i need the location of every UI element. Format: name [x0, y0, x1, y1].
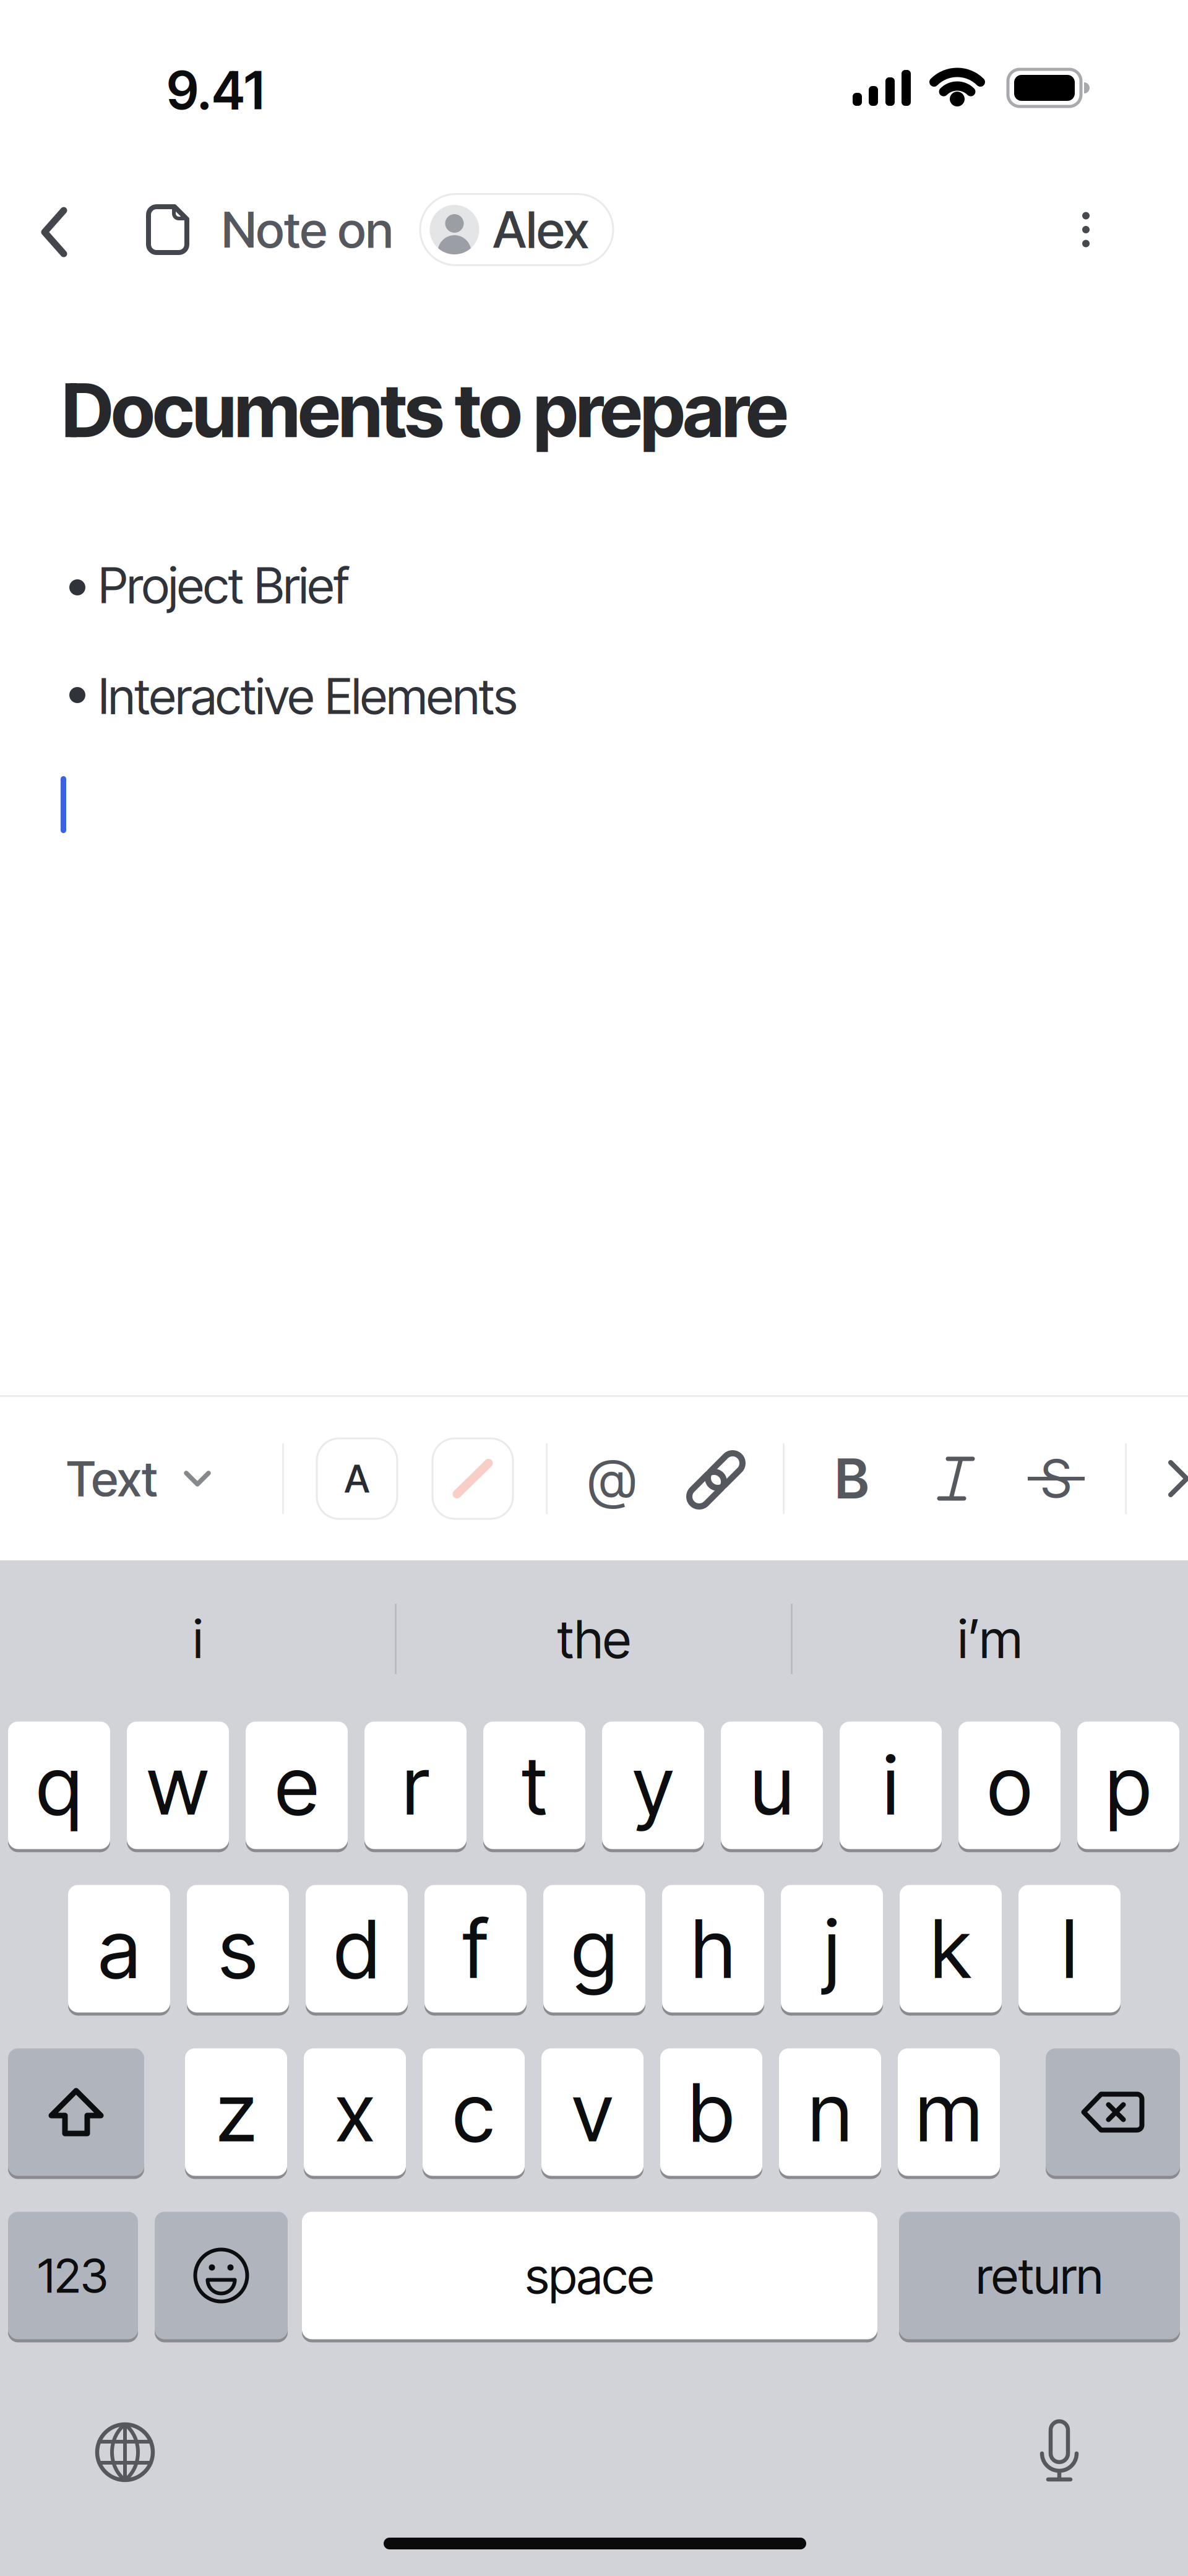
staticText: space: [525, 2246, 654, 2305]
button[interactable]: h: [662, 1883, 764, 2014]
staticText: a: [98, 1900, 140, 1997]
button[interactable]: m: [898, 2047, 1000, 2177]
staticText: B: [835, 1446, 869, 1512]
button[interactable]: More formatting: [1168, 1460, 1188, 1497]
button[interactable]: j: [781, 1883, 883, 2014]
button[interactable]: t: [483, 1720, 585, 1851]
button[interactable]: s: [187, 1883, 289, 2014]
button[interactable]: k: [900, 1883, 1002, 2014]
button[interactable]: c: [423, 2047, 525, 2177]
staticText: Project Brief: [98, 555, 349, 615]
staticText: f: [463, 1900, 488, 1997]
staticText: S: [1041, 1447, 1072, 1510]
staticText: 123: [38, 2247, 108, 2304]
button[interactable]: l: [1018, 1883, 1121, 2014]
staticText: x: [335, 2063, 375, 2161]
staticText: k: [931, 1900, 971, 1997]
button[interactable]: 123: [8, 2210, 138, 2341]
staticText: Documents to prepare: [62, 365, 788, 455]
button[interactable]: Mention: [588, 1446, 636, 1512]
button[interactable]: a: [68, 1883, 170, 2014]
staticText: Interactive Elements: [98, 666, 517, 726]
button[interactable]: x: [304, 2047, 406, 2177]
button[interactable]: Strikethrough: [1028, 1447, 1085, 1510]
button[interactable]: d: [306, 1883, 408, 2014]
staticText: u: [751, 1737, 793, 1834]
staticText: i’m: [958, 1607, 1022, 1670]
button[interactable]: Next keyboard: [95, 2423, 155, 2482]
staticText: h: [691, 1900, 735, 1997]
staticText: v: [572, 2063, 613, 2161]
staticText: t: [522, 1737, 547, 1834]
button[interactable]: e: [246, 1720, 348, 1851]
button[interactable]: o: [958, 1720, 1061, 1851]
button[interactable]: f: [424, 1883, 527, 2014]
staticText: y: [633, 1737, 674, 1834]
staticText: z: [216, 2063, 256, 2161]
staticText: p: [1106, 1737, 1151, 1834]
button[interactable]: g: [543, 1883, 645, 2014]
button[interactable]: Back: [41, 207, 67, 257]
button[interactable]: i: [193, 1607, 203, 1670]
staticText: w: [147, 1737, 209, 1834]
button[interactable]: Bold: [835, 1446, 869, 1512]
button[interactable]: z: [185, 2047, 287, 2177]
staticText: Alex: [493, 199, 589, 260]
button[interactable]: p: [1077, 1720, 1179, 1851]
staticText: m: [916, 2063, 982, 2161]
staticText: i: [193, 1607, 203, 1670]
button[interactable]: space: [302, 2210, 877, 2341]
button[interactable]: Dictate: [1031, 2418, 1088, 2482]
button[interactable]: v: [541, 2047, 643, 2177]
button[interactable]: Link: [682, 1446, 750, 1514]
staticText: n: [808, 2063, 852, 2161]
staticText: o: [988, 1737, 1031, 1834]
staticText: c: [453, 2063, 494, 2161]
button[interactable]: return: [899, 2210, 1180, 2341]
staticText: q: [37, 1737, 82, 1834]
button[interactable]: w: [127, 1720, 229, 1851]
button[interactable]: b: [660, 2047, 762, 2177]
staticText: i: [883, 1737, 898, 1834]
button[interactable]: i: [840, 1720, 942, 1851]
staticText: b: [689, 2063, 734, 2161]
button[interactable]: Shift: [8, 2047, 144, 2177]
staticText: the: [557, 1607, 631, 1670]
button[interactable]: Text style: [316, 1437, 398, 1520]
button[interactable]: Emoji: [155, 2210, 288, 2341]
button[interactable]: the: [557, 1607, 631, 1670]
staticText: g: [572, 1900, 617, 1997]
button[interactable]: Highlight: [432, 1437, 514, 1520]
staticText: l: [1062, 1900, 1077, 1997]
button[interactable]: n: [779, 2047, 881, 2177]
button[interactable]: Alex: [419, 193, 614, 266]
staticText: A: [344, 1455, 370, 1502]
staticText: Note on: [222, 200, 394, 260]
button[interactable]: More: [1078, 203, 1093, 256]
staticText: d: [334, 1900, 379, 1997]
staticText: 9.41: [167, 59, 264, 122]
staticText: e: [275, 1737, 318, 1834]
staticText: return: [976, 2246, 1103, 2305]
button[interactable]: q: [8, 1720, 110, 1851]
button[interactable]: Text: [66, 1449, 211, 1508]
staticText: @: [588, 1446, 636, 1512]
staticText: r: [402, 1737, 428, 1834]
button[interactable]: u: [721, 1720, 823, 1851]
button[interactable]: Italic: [934, 1457, 978, 1500]
staticText: Text: [66, 1449, 158, 1508]
staticText: j: [824, 1900, 840, 1997]
button[interactable]: y: [602, 1720, 704, 1851]
button[interactable]: r: [364, 1720, 467, 1851]
button[interactable]: i’m: [958, 1607, 1022, 1670]
staticText: s: [219, 1900, 257, 1997]
button[interactable]: Delete: [1046, 2047, 1180, 2177]
